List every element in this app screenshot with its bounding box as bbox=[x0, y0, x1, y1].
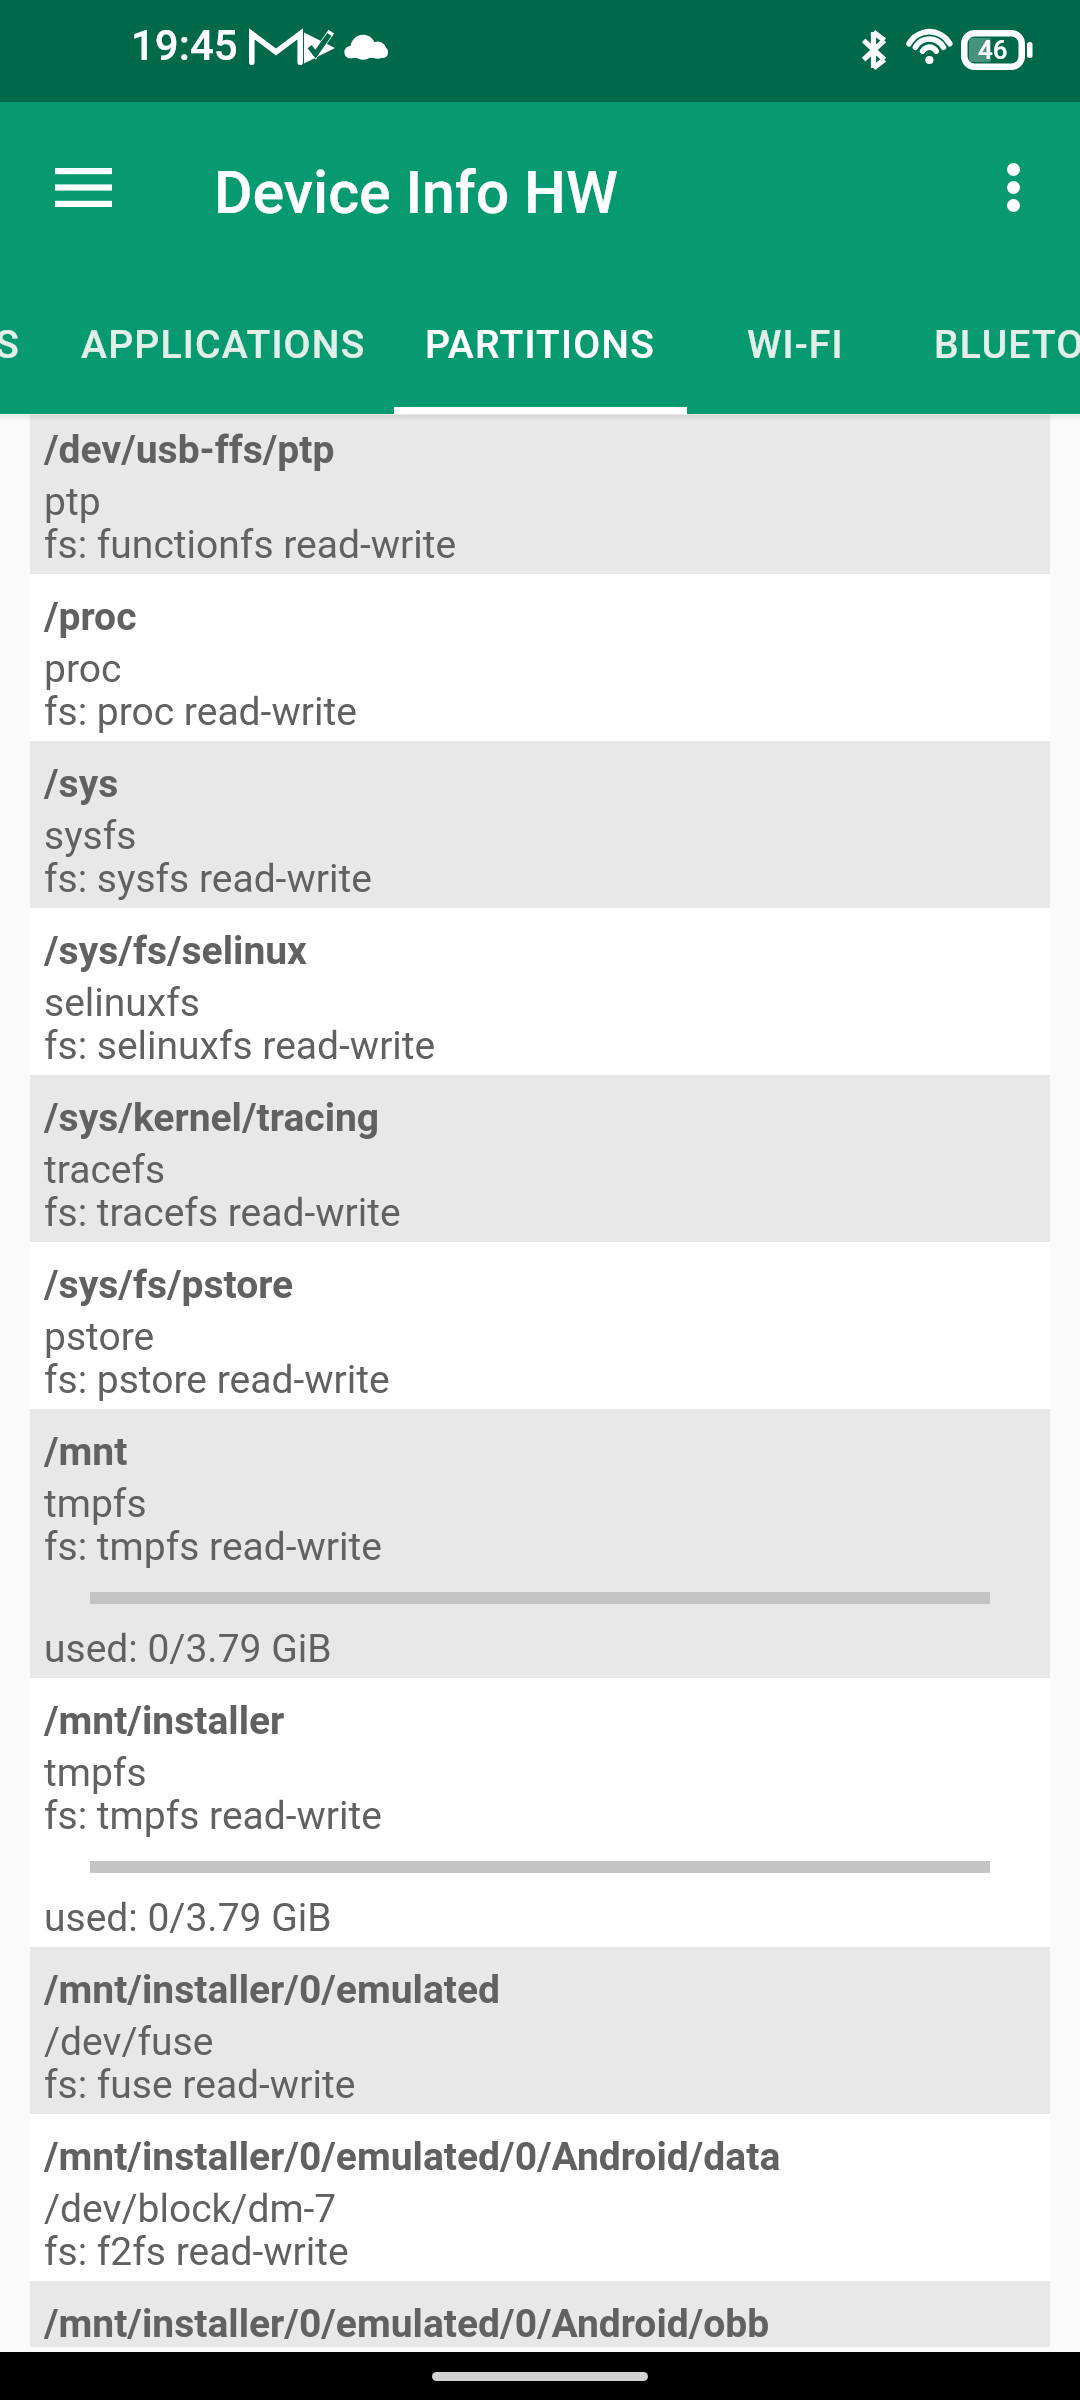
staticText: /sys/fs/pstore bbox=[44, 1262, 294, 1308]
staticText: /sys/fs/selinux bbox=[44, 928, 307, 974]
staticText: /mnt/installer/0/emulated/0/Android/obb bbox=[44, 2301, 770, 2341]
staticText: sysfs fs: sysfs read-write bbox=[44, 813, 372, 902]
button[interactable]: APPLICATIONS bbox=[53, 294, 393, 414]
staticText: Device Info HW bbox=[214, 158, 618, 227]
button[interactable]: More options bbox=[954, 129, 1074, 249]
button[interactable]: WI-FI bbox=[687, 294, 903, 414]
staticText: /mnt/installer bbox=[44, 1698, 285, 1744]
button[interactable]: /sys/fs/pstore bbox=[30, 1242, 1050, 1409]
staticText: used: 0/3.79 GiB bbox=[44, 1895, 332, 1941]
staticText: selinuxfs fs: selinuxfs read-write bbox=[44, 980, 436, 1069]
staticText: SENSORS bbox=[0, 322, 21, 368]
staticText: used: 0/3.79 GiB bbox=[44, 1626, 332, 1672]
button[interactable]: /sys/kernel/tracing bbox=[30, 1075, 1050, 1242]
staticText: pstore fs: pstore read-write bbox=[44, 1314, 390, 1403]
staticText: proc fs: proc read-write bbox=[44, 646, 357, 735]
staticText: /mnt/installer/0/emulated/0/Android/data bbox=[44, 2134, 781, 2180]
staticText: /dev/usb-ffs/ptp bbox=[44, 427, 335, 473]
button[interactable]: /mnt/installer/0/emulated/0/Android/obb bbox=[30, 2281, 1050, 2347]
staticText: ptp fs: functionfs read-write bbox=[44, 479, 457, 568]
button[interactable]: Open navigation drawer bbox=[24, 129, 144, 249]
staticText: /mnt/installer/0/emulated bbox=[44, 1967, 501, 2013]
staticText: BLUETOOTH bbox=[934, 322, 1080, 368]
staticText: /dev/fuse fs: fuse read-write bbox=[44, 2019, 356, 2108]
staticText: /sys/kernel/tracing bbox=[44, 1095, 380, 1141]
staticText: /proc bbox=[44, 594, 137, 640]
button[interactable]: /sys/fs/selinux bbox=[30, 908, 1050, 1075]
staticText: 19:45 bbox=[131, 21, 238, 70]
staticText: PARTITIONS bbox=[425, 322, 655, 368]
button[interactable]: /proc bbox=[30, 574, 1050, 741]
button[interactable]: /sys bbox=[30, 741, 1050, 908]
staticText: tmpfs fs: tmpfs read-write bbox=[44, 1750, 382, 1839]
staticText: tracefs fs: tracefs read-write bbox=[44, 1147, 401, 1236]
button[interactable]: /dev/usb-ffs/ptp bbox=[30, 414, 1050, 574]
staticText: tmpfs fs: tmpfs read-write bbox=[44, 1481, 382, 1570]
staticText: /mnt bbox=[44, 1429, 128, 1475]
button[interactable]: /mnt/installer/0/emulated/0/Android/data bbox=[30, 2114, 1050, 2281]
button[interactable]: /mnt/installer/0/emulated bbox=[30, 1947, 1050, 2114]
button[interactable]: /mnt bbox=[30, 1409, 1050, 1678]
button[interactable]: PARTITIONS bbox=[393, 294, 687, 414]
staticText: APPLICATIONS bbox=[81, 322, 366, 368]
button[interactable]: BLUETOOTH bbox=[903, 294, 1080, 414]
staticText: 46 bbox=[978, 35, 1008, 65]
button[interactable]: SENSORS bbox=[0, 294, 21, 414]
staticText: WI-FI bbox=[747, 322, 844, 368]
staticText: /dev/block/dm-7 fs: f2fs read-write bbox=[44, 2186, 349, 2275]
staticText: /sys bbox=[44, 761, 119, 807]
button[interactable]: /mnt/installer bbox=[30, 1678, 1050, 1947]
